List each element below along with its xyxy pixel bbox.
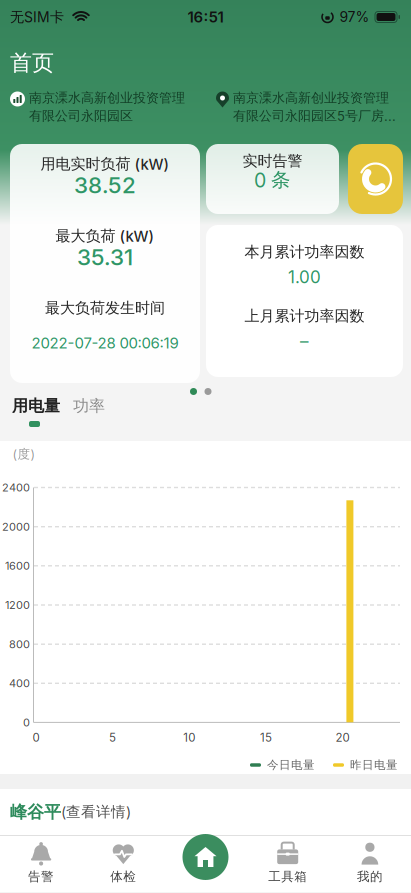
staticText: 昨日电量 (350, 758, 398, 772)
staticText: 15 (260, 731, 272, 744)
button[interactable]: 南京溧水高新创业投资管理 (0, 89, 216, 124)
button[interactable]: 工具箱 (253, 838, 323, 888)
button[interactable]: 体检 (88, 838, 158, 888)
staticText: 最大负荷发生时间 (45, 299, 165, 317)
button[interactable]: 呼叫 (348, 144, 403, 214)
staticText: 35.31 (77, 243, 133, 271)
button[interactable]: 告警 (6, 838, 76, 888)
staticText: 上月累计功率因数 (244, 307, 364, 325)
staticText: 0 (23, 716, 30, 729)
staticText: 工具箱 (268, 869, 307, 884)
staticText: 1600 (5, 559, 30, 572)
staticText: 0 (32, 731, 39, 744)
staticText: 有限公司永阳园区 (29, 108, 133, 124)
staticText: 南京溧水高新创业投资管理 (29, 90, 185, 106)
button[interactable]: 南京溧水高新创业投资管理 (216, 89, 411, 124)
staticText: 97% (339, 8, 369, 25)
staticText: 用电实时负荷 (kW) (40, 155, 169, 173)
staticText: 20 (335, 731, 349, 744)
staticText: 体检 (110, 869, 136, 884)
staticText: 本月累计功率因数 (244, 243, 364, 261)
staticText: 最大负荷 (kW) (55, 227, 154, 245)
staticText: 10 (183, 731, 195, 744)
staticText: 5 (109, 731, 116, 744)
staticText: 功率 (73, 396, 105, 416)
staticText: – (300, 331, 309, 351)
staticText: 今日电量 (267, 758, 315, 772)
staticText: 峰谷平 (10, 801, 61, 823)
button[interactable]: 首页 (182, 834, 228, 880)
staticText: 无SIM卡 (10, 8, 64, 26)
button[interactable]: 用电量 (12, 396, 60, 416)
staticText: 2000 (2, 520, 30, 533)
staticText: 800 (9, 637, 30, 651)
staticText: 16:51 (187, 8, 223, 26)
staticText: 有限公司永阳园区5号厂房... (233, 108, 396, 124)
staticText: 0 条 (254, 168, 291, 192)
staticText: (查看详情) (61, 803, 131, 821)
staticText: 实时告警 (242, 152, 302, 170)
staticText: 南京溧水高新创业投资管理 (233, 90, 389, 106)
staticText: (度) (12, 446, 35, 462)
staticText: 1.00 (288, 267, 321, 287)
button[interactable]: 功率 (73, 396, 105, 416)
staticText: 告警 (28, 869, 54, 884)
staticText: 首页 (10, 49, 54, 77)
staticText: 2022-07-28 00:06:19 (31, 334, 178, 352)
button[interactable]: 峰谷平 (0, 789, 411, 835)
staticText: 1200 (5, 598, 30, 612)
staticText: 我的 (357, 869, 383, 884)
staticText: 2400 (2, 481, 30, 494)
staticText: 用电量 (12, 396, 60, 416)
staticText: 38.52 (74, 171, 136, 199)
staticText: 400 (9, 677, 30, 690)
button[interactable]: 我的 (335, 838, 405, 888)
